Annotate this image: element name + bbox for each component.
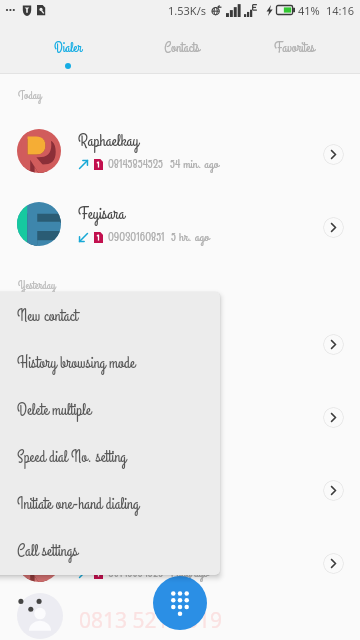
staticText: 54 min. ago [170,155,219,173]
button[interactable]: New contact [0,292,220,339]
staticText: 08199887769 [108,491,163,509]
staticText: 08145854529 [108,564,164,582]
staticText: Tunde [78,393,111,416]
staticText: Favorites [274,39,315,58]
button[interactable]: Adewale [0,527,360,600]
staticText: Today [18,88,42,104]
staticText: New contact [17,305,78,327]
staticText: Delete multiple [17,399,91,421]
button[interactable]: Contacts [125,20,238,63]
staticText: Chidinma [78,466,127,489]
staticText: Feyisara [78,203,125,226]
staticText: Initiate one-hand dialing [17,493,139,515]
staticText: 08033222119 [108,345,164,363]
staticText: 0813 521 3319 [79,606,223,635]
button[interactable]: Dialer [11,20,125,69]
button[interactable]: Call details [323,217,344,238]
button[interactable]: Initiate one-hand dialing [0,480,220,527]
button[interactable]: 0813 521 3319 [0,600,360,640]
button[interactable]: Feyisara [0,191,360,264]
button[interactable]: Raphaelkay [0,118,360,191]
staticText: 09030160851 [108,228,165,246]
button[interactable]: Call details [323,407,344,428]
button[interactable]: Chidinma [0,454,360,527]
staticText: Contacts [164,39,200,58]
staticText: Dialer [54,39,82,58]
staticText: 08145854525 [108,155,164,173]
button[interactable]: Favorites [238,20,351,63]
staticText: 14:16 [326,3,355,18]
staticText: Raphaelkay [78,130,139,153]
staticText: Yesterday [18,278,56,294]
button[interactable]: Delete multiple [0,386,220,433]
staticText: Speed dial No. setting [17,446,127,468]
staticText: 5 hr. ago [171,228,210,246]
staticText: 1 day ago [170,564,209,582]
staticText: 1.53K/s [168,3,206,18]
staticText: Adewale [78,539,121,562]
staticText: 41% [298,3,320,18]
button[interactable]: Call details [323,334,344,355]
button[interactable]: Call details [323,553,344,574]
button[interactable]: Speed dial No. setting [0,433,220,480]
button[interactable]: Olamide [0,308,360,381]
staticText: Call settings [17,540,78,562]
button[interactable]: Open dialpad [153,576,207,630]
button[interactable]: Call settings [0,527,220,574]
button[interactable]: Call details [323,144,344,165]
button[interactable]: Tunde [0,381,360,454]
button[interactable]: History browsing mode [0,339,220,386]
button[interactable]: Call details [323,480,344,501]
staticText: History browsing mode [17,352,135,374]
